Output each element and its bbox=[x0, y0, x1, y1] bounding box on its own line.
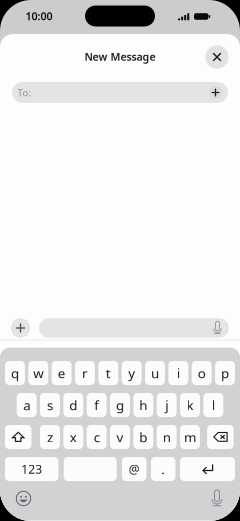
staticText: n bbox=[163, 428, 171, 446]
staticText: 10:00 bbox=[25, 9, 52, 23]
button[interactable]: t bbox=[98, 361, 118, 385]
staticText: z bbox=[47, 428, 53, 446]
button[interactable] bbox=[207, 425, 234, 449]
staticText: v bbox=[116, 428, 123, 446]
button[interactable]: g bbox=[110, 393, 130, 417]
staticText: k bbox=[186, 396, 193, 414]
staticText: a bbox=[23, 396, 30, 414]
button[interactable]: n bbox=[157, 425, 177, 449]
staticText: t bbox=[106, 364, 111, 382]
button[interactable]: s bbox=[40, 393, 60, 417]
button[interactable]: c bbox=[87, 425, 107, 449]
staticText: i bbox=[177, 364, 180, 382]
button[interactable]: Dictate bbox=[209, 319, 226, 336]
button[interactable]: i bbox=[168, 361, 188, 385]
staticText: j bbox=[165, 396, 168, 414]
staticText: q bbox=[11, 364, 19, 382]
button[interactable]: z bbox=[40, 425, 60, 449]
staticText: s bbox=[47, 396, 53, 414]
staticText: m bbox=[184, 428, 196, 446]
button[interactable] bbox=[64, 457, 117, 481]
button[interactable]: k bbox=[180, 393, 200, 417]
button[interactable]: p bbox=[215, 361, 235, 385]
staticText: d bbox=[69, 396, 77, 414]
button[interactable]: Close bbox=[205, 45, 229, 69]
button[interactable]: w bbox=[28, 361, 48, 385]
staticText: p bbox=[221, 364, 229, 382]
button[interactable]: x bbox=[63, 425, 83, 449]
staticText: b bbox=[139, 428, 147, 446]
button[interactable]: h bbox=[133, 393, 153, 417]
staticText: g bbox=[116, 396, 124, 414]
button[interactable]: Emoji bbox=[10, 485, 36, 511]
button[interactable]: b bbox=[133, 425, 153, 449]
button[interactable]: r bbox=[75, 361, 95, 385]
staticText: u bbox=[151, 364, 159, 382]
staticText: f bbox=[94, 396, 99, 414]
button[interactable]: @ bbox=[122, 457, 146, 481]
staticText: h bbox=[139, 396, 147, 414]
staticText: New Message bbox=[84, 49, 155, 64]
staticText: w bbox=[33, 364, 43, 382]
button[interactable]: Attach bbox=[11, 318, 30, 338]
button[interactable]: d bbox=[63, 393, 83, 417]
button[interactable]: 123 bbox=[5, 457, 58, 481]
staticText: 123 bbox=[21, 461, 42, 477]
staticText: . bbox=[161, 460, 165, 478]
button[interactable]: m bbox=[180, 425, 200, 449]
button[interactable] bbox=[5, 425, 31, 449]
staticText: @ bbox=[129, 461, 140, 477]
button[interactable]: y bbox=[122, 361, 142, 385]
button[interactable]: v bbox=[110, 425, 130, 449]
button[interactable]: q bbox=[5, 361, 25, 385]
staticText: x bbox=[70, 428, 77, 446]
button[interactable]: Dictation bbox=[204, 485, 230, 511]
button[interactable]: . bbox=[151, 457, 175, 481]
staticText: l bbox=[212, 396, 215, 414]
button[interactable] bbox=[180, 457, 235, 481]
button[interactable]: j bbox=[157, 393, 177, 417]
staticText: o bbox=[198, 364, 206, 382]
button[interactable]: l bbox=[203, 393, 223, 417]
staticText: r bbox=[82, 364, 88, 382]
button[interactable]: u bbox=[145, 361, 165, 385]
staticText: c bbox=[94, 428, 100, 446]
staticText: e bbox=[58, 364, 66, 382]
button[interactable]: o bbox=[192, 361, 212, 385]
button[interactable]: f bbox=[87, 393, 107, 417]
button[interactable]: Add contact bbox=[207, 84, 223, 100]
staticText: y bbox=[128, 364, 135, 382]
button[interactable]: a bbox=[17, 393, 37, 417]
staticText: To: bbox=[17, 86, 31, 99]
button[interactable]: e bbox=[52, 361, 72, 385]
